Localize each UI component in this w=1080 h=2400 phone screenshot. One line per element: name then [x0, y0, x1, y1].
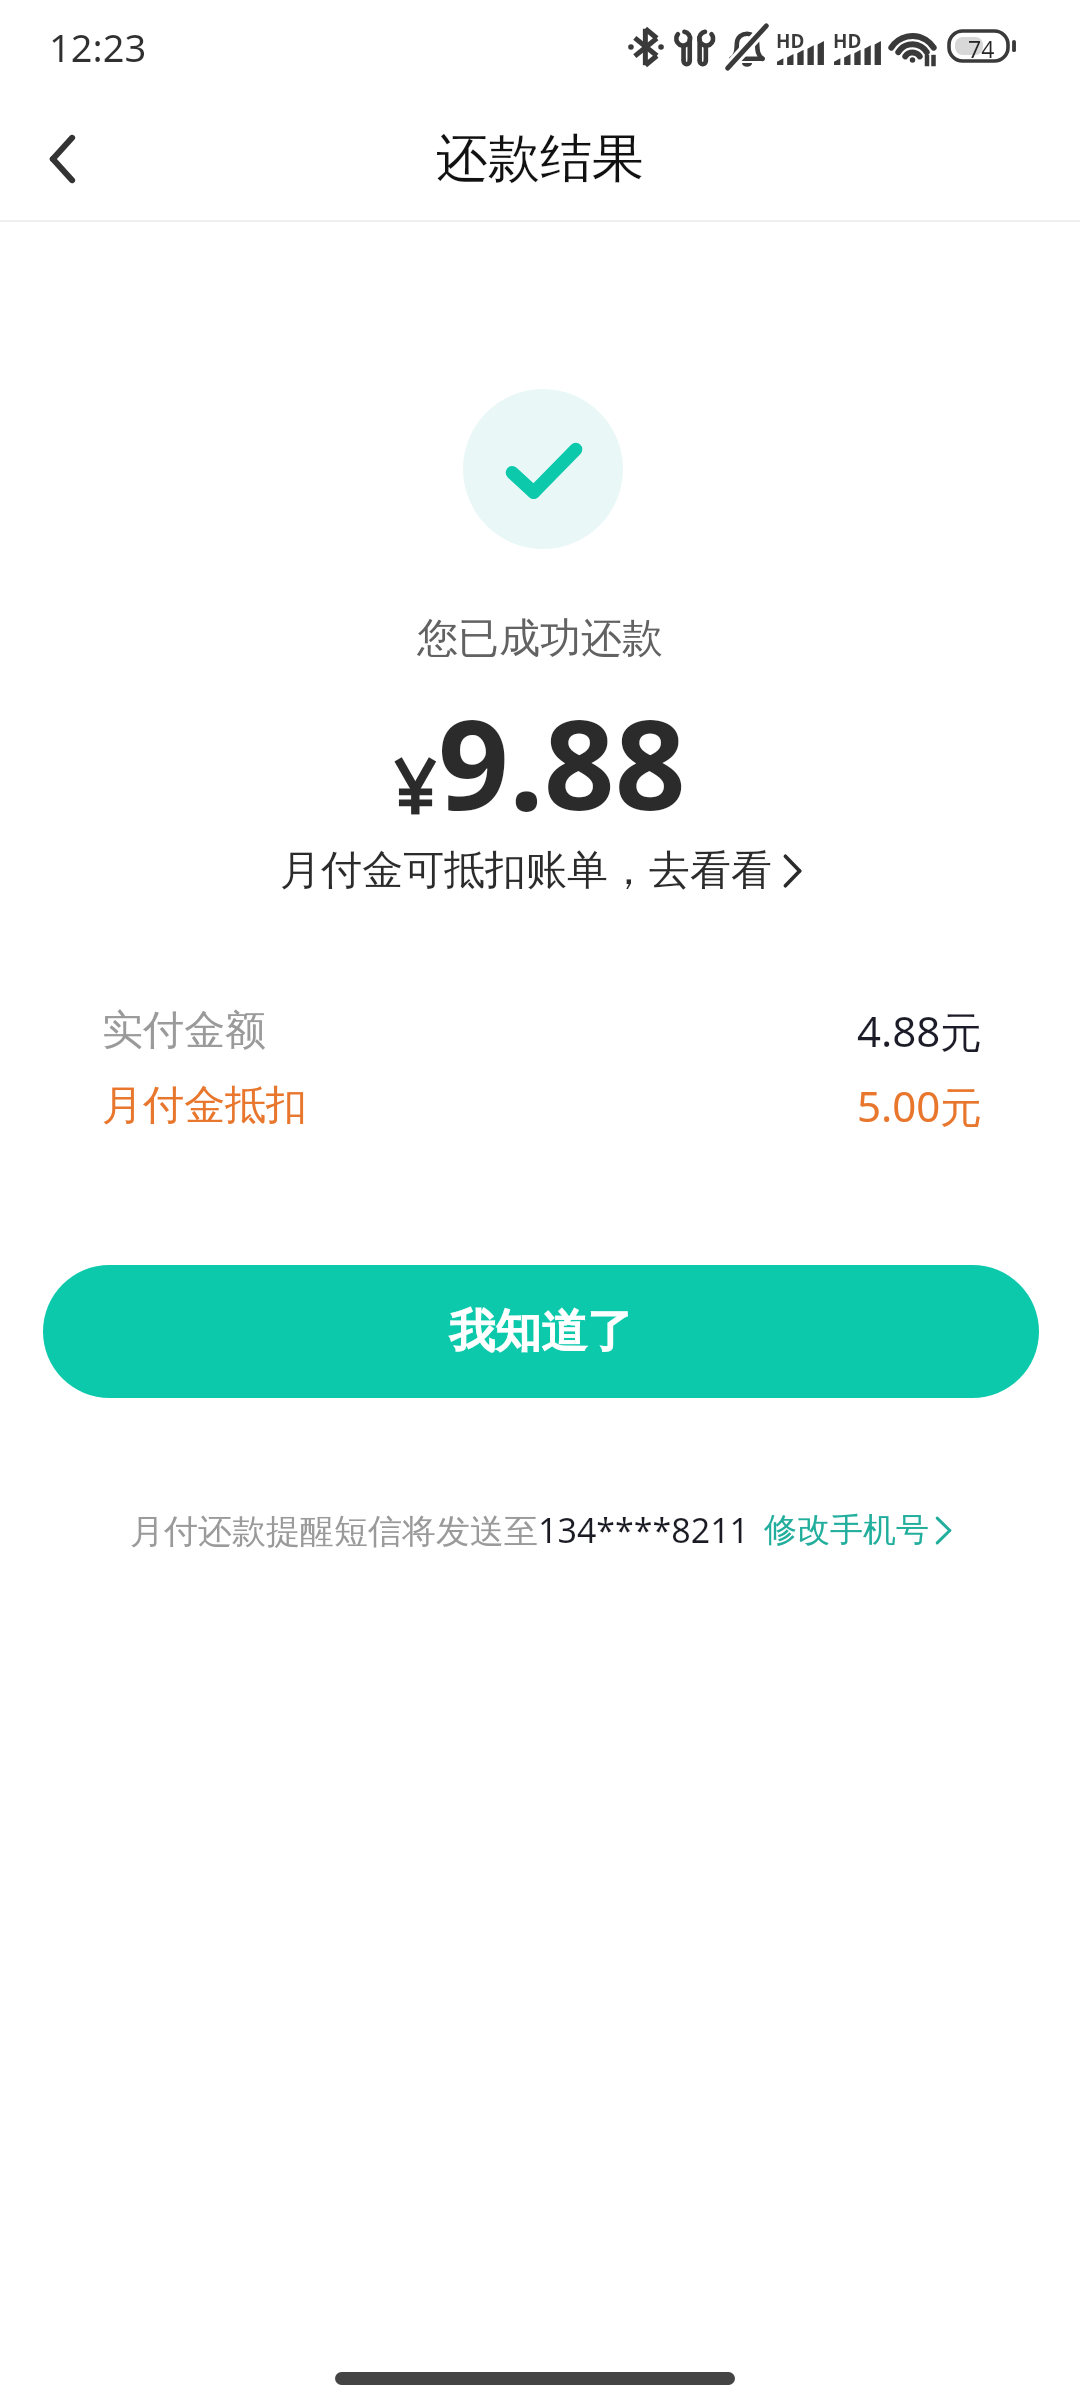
staticText: 月付还款提醒短信将发送至134****8211 [130, 1507, 750, 1553]
staticText: 还款结果 [436, 126, 644, 192]
button[interactable]: 修改手机号 [764, 1509, 951, 1551]
staticText: 您已成功还款 [0, 613, 1080, 665]
staticText: 我知道了 [449, 1303, 633, 1361]
staticText: 12:23 [49, 21, 147, 73]
staticText: 4.88元 [857, 1002, 983, 1059]
staticText: 月付金抵扣 [102, 1080, 307, 1132]
button[interactable]: 月付金可抵扣账单，去看看 [0, 845, 1080, 897]
button[interactable]: Back [20, 106, 120, 206]
staticText: 9.88 [438, 677, 686, 846]
staticText: 实付金额 [102, 1005, 266, 1057]
staticText: 5.00元 [857, 1077, 983, 1134]
staticText: 74 [968, 33, 995, 64]
staticText: 修改手机号 [764, 1509, 929, 1551]
button[interactable]: 我知道了 [43, 1265, 1039, 1398]
staticText: HD [833, 28, 862, 54]
staticText: 月付金可抵扣账单，去看看 [280, 845, 772, 897]
staticText: HD [776, 28, 805, 54]
